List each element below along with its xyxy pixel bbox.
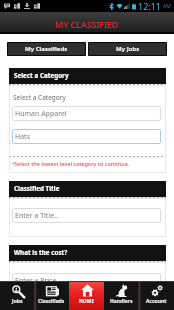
staticText: Human Apparel [15,109,67,119]
button[interactable]: My Classifieds [7,42,86,56]
button[interactable]: Human Apparel [15,106,161,121]
button[interactable]: Enter a Price [15,273,161,288]
other: Handlers [115,284,128,297]
staticText: MY CLASSIFIED [55,18,119,30]
staticText: AM [163,3,171,10]
button[interactable]: Classifieds [34,281,69,310]
other: Account [150,284,164,297]
staticText: What is the cost? [14,248,68,257]
other: Classifieds [45,284,59,297]
staticText: Handlers [110,298,133,305]
staticText: Enter a Price [15,276,57,286]
staticText: HOME [79,298,95,305]
button[interactable]: Account [139,281,174,310]
staticText: My Jobs [116,45,140,53]
button[interactable]: Hats [15,129,161,144]
button[interactable]: Jobs [0,281,34,310]
button[interactable]: Handlers [104,281,139,310]
staticText: Hats [15,132,30,142]
staticText: Enter a Title.. [15,211,58,221]
other: Home [81,284,94,297]
staticText: 12:11 [138,0,162,12]
staticText: Classified Title [14,184,60,193]
staticText: Classifieds [38,298,65,305]
button[interactable]: Home [69,281,104,310]
other: Jobs [10,284,25,298]
button[interactable]: Enter a Title.. [15,208,161,223]
staticText: Account [146,298,167,305]
staticText: •Select the lowest level category to con… [12,160,130,167]
staticText: Jobs [12,298,23,305]
staticText: My Classifieds [25,45,68,53]
staticText: Select a Category [14,71,69,80]
button[interactable]: My Jobs [88,42,167,56]
staticText: Select a Category [13,93,66,102]
